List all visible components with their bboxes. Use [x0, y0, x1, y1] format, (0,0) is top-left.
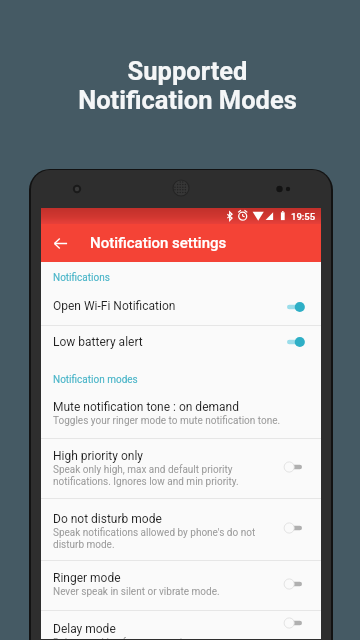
staticText: Toggles your ringer mode to mute notific… [53, 415, 281, 427]
staticText: Never speak in silent or vibrate mode. [53, 586, 220, 598]
staticText: Speak notifications allowed by phone's d… [53, 527, 256, 550]
button[interactable]: Switch on [286, 299, 307, 315]
button[interactable]: Open Wi-Fi Notification [41, 293, 321, 325]
staticText: Notification settings [90, 234, 227, 252]
button[interactable]: Back [41, 224, 79, 262]
staticText: Ringer mode [53, 571, 121, 585]
button[interactable]: High priority only [41, 439, 321, 498]
button[interactable]: Switch off [286, 615, 307, 631]
staticText: 19:55 [291, 211, 316, 222]
staticText: Low battery alert [53, 335, 143, 349]
staticText: Mute notification tone : on demand [53, 400, 239, 414]
button[interactable]: Ringer mode [41, 561, 321, 610]
staticText: Delay speaking for a moment. [53, 637, 186, 639]
button[interactable]: Switch on [286, 334, 307, 350]
button[interactable]: Delay mode [41, 611, 321, 639]
button[interactable]: Low battery alert [41, 326, 321, 361]
staticText: High priority only [53, 449, 143, 463]
button[interactable]: Switch off [286, 576, 307, 592]
staticText: Open Wi-Fi Notification [53, 299, 176, 313]
button[interactable]: Switch off [286, 520, 307, 536]
staticText: Notification modes [53, 374, 138, 386]
button[interactable]: Switch off [286, 459, 307, 475]
staticText: Do not disturb mode [53, 512, 162, 526]
button[interactable]: Mute notification tone : on demand [41, 398, 321, 438]
staticText: Supported Notification Modes [78, 56, 297, 115]
staticText: Notifications [53, 272, 110, 284]
staticText: Speak only high, max and default priorit… [53, 464, 239, 487]
button[interactable]: Do not disturb mode [41, 499, 321, 560]
staticText: Delay mode [53, 622, 116, 636]
